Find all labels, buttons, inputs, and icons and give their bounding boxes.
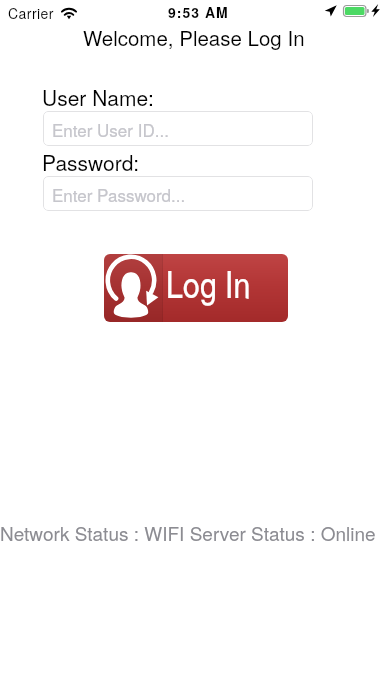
staticText: Network Status : WIFI Server Status : On… [0, 519, 376, 546]
button[interactable]: Enter Password... [43, 176, 313, 211]
staticText: Password: [42, 147, 140, 177]
button[interactable]: Enter User ID... [43, 111, 313, 146]
staticText: Enter Password... [52, 182, 186, 206]
other: Charging [371, 4, 380, 17]
staticText: 9:53 AM [168, 2, 229, 22]
staticText: Welcome, Please Log In [83, 22, 305, 51]
button[interactable]: Log In [104, 254, 288, 322]
staticText: Enter User ID... [52, 117, 169, 141]
staticText: Log In [166, 258, 251, 309]
staticText: User Name: [42, 82, 154, 112]
staticText: Carrier [8, 3, 54, 23]
other: Battery [343, 5, 369, 17]
other: Location [324, 4, 337, 17]
